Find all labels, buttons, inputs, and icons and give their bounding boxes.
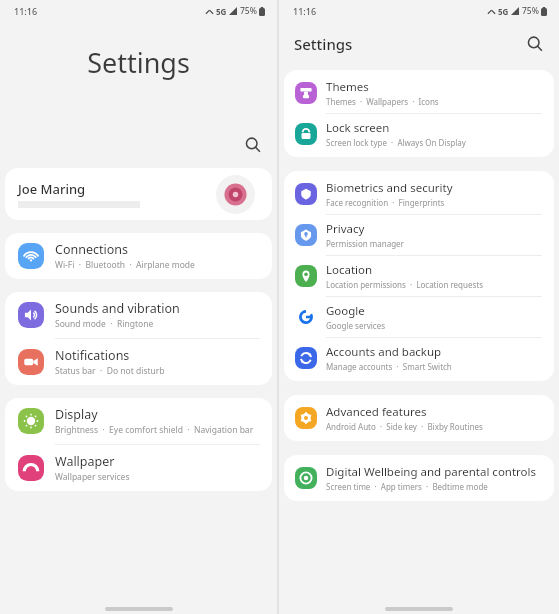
staticText: 75% [240, 5, 257, 17]
staticText: Android Auto · Side key · Bixby Routines [326, 421, 483, 432]
staticText: Digital Wellbeing and parental controls [326, 464, 537, 480]
staticText: Screen lock type · Always On Display [326, 137, 466, 148]
staticText: Notifications [55, 347, 130, 364]
staticText: 5G [216, 6, 227, 17]
button[interactable]: Sounds and vibration [5, 292, 272, 339]
staticText: Permission manager [326, 238, 404, 249]
button[interactable]: Lock screen [284, 114, 554, 154]
button[interactable]: Biometrics and security [284, 174, 554, 215]
staticText: Status bar · Do not disturb [55, 365, 165, 377]
staticText: Location permissions · Location requests [326, 279, 484, 290]
button[interactable]: Themes [284, 73, 554, 114]
staticText: Sounds and vibration [55, 300, 180, 317]
staticText: Face recognition · Fingerprints [326, 197, 445, 208]
staticText: Wallpaper services [55, 471, 130, 483]
staticText: Wallpaper [55, 453, 115, 470]
staticText: Connections [55, 241, 128, 258]
staticText: Screen time · App timers · Bedtime mode [326, 481, 488, 492]
staticText: Biometrics and security [326, 180, 453, 196]
button[interactable]: Notifications [5, 339, 272, 385]
button[interactable]: Display [5, 398, 272, 445]
button[interactable]: Location [284, 256, 554, 297]
button[interactable]: Privacy [284, 215, 554, 256]
staticText: Google services [326, 320, 386, 331]
button[interactable]: Search [239, 131, 267, 159]
button[interactable]: Search [521, 30, 549, 58]
staticText: Settings [0, 44, 277, 81]
staticText: Wi-Fi · Bluetooth · Airplane mode [55, 259, 195, 271]
button[interactable]: Google [284, 297, 554, 338]
staticText: Accounts and backup [326, 344, 442, 360]
staticText: 11:16 [14, 5, 38, 17]
staticText: Settings [294, 34, 353, 54]
staticText: Themes · Wallpapers · Icons [326, 96, 439, 107]
button[interactable]: Connections [5, 233, 272, 279]
staticText: Manage accounts · Smart Switch [326, 361, 452, 372]
staticText: 5G [498, 6, 509, 17]
staticText: Themes [326, 79, 369, 95]
staticText: Advanced features [326, 404, 427, 420]
button[interactable]: Accounts and backup [284, 338, 554, 378]
staticText: Sound mode · Ringtone [55, 318, 154, 330]
staticText: Privacy [326, 221, 365, 237]
button[interactable]: Advanced features [284, 398, 554, 438]
staticText: Display [55, 406, 98, 423]
staticText: 11:16 [293, 5, 317, 17]
staticText: Brightness · Eye comfort shield · Naviga… [55, 424, 254, 436]
staticText: Google [326, 303, 365, 319]
staticText: Lock screen [326, 120, 390, 136]
staticText: Joe Maring [18, 180, 86, 198]
staticText: 75% [522, 5, 539, 17]
button[interactable]: Joe Maring [5, 168, 272, 220]
staticText: Location [326, 262, 373, 278]
button[interactable]: Wallpaper [5, 445, 272, 491]
button[interactable]: Digital Wellbeing and parental controls [284, 458, 554, 498]
